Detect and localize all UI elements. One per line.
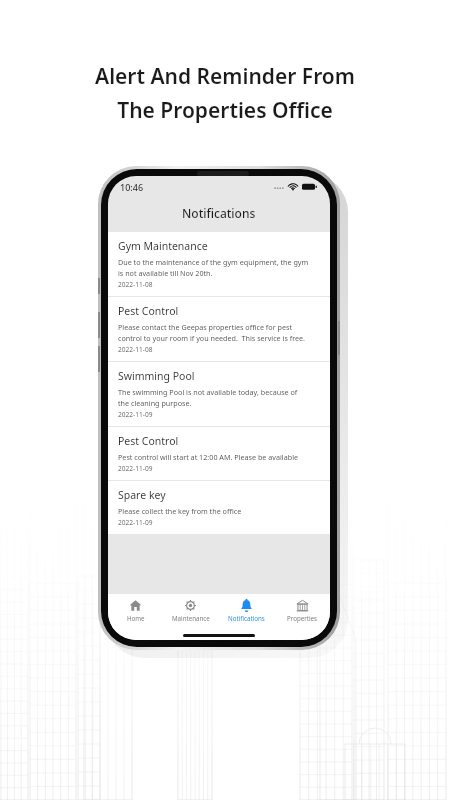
- staticText: The swimming Pool is not available today…: [118, 387, 298, 397]
- button[interactable]: Pest Control: [108, 427, 330, 480]
- button[interactable]: Spare key: [108, 481, 330, 534]
- staticText: 10:46: [120, 181, 144, 193]
- staticText: Due to the maintenance of the gym equipm…: [118, 257, 309, 267]
- staticText: Notifications: [182, 205, 256, 221]
- button[interactable]: Maintenance: [163, 599, 218, 622]
- staticText: is not available till Nov 20th.: [118, 268, 213, 278]
- staticText: Swimming Pool: [118, 369, 195, 383]
- staticText: Please contact the Geepas properties off…: [118, 322, 293, 332]
- staticText: Pest control will start at 12:00 AM. Ple…: [118, 452, 299, 462]
- button[interactable]: Swimming Pool: [108, 362, 330, 426]
- staticText: Pest Control: [118, 304, 179, 318]
- staticText: Notifications: [228, 614, 265, 622]
- staticText: Pest Control: [118, 434, 179, 448]
- button[interactable]: Home: [108, 599, 163, 622]
- button[interactable]: Notifications: [218, 599, 274, 622]
- staticText: 2022-11-08: [118, 345, 153, 354]
- button[interactable]: Pest Control: [108, 297, 330, 361]
- staticText: Gym Maintenance: [118, 239, 208, 253]
- staticText: Please collect the key from the office: [118, 506, 242, 516]
- staticText: Properties: [287, 614, 318, 622]
- staticText: 2022-11-08: [118, 280, 153, 289]
- staticText: the cleaning purpose.: [118, 398, 192, 408]
- button[interactable]: Properties: [274, 599, 330, 622]
- staticText: Spare key: [118, 488, 166, 502]
- staticText: 2022-11-09: [118, 518, 153, 527]
- staticText: The Properties Office: [117, 96, 333, 125]
- staticText: Maintenance: [172, 614, 210, 622]
- staticText: Home: [127, 614, 145, 622]
- button[interactable]: Gym Maintenance: [108, 232, 330, 296]
- staticText: control to your room if you needed. This…: [118, 333, 306, 343]
- staticText: Alert And Reminder From: [95, 62, 355, 91]
- staticText: 2022-11-09: [118, 464, 153, 473]
- staticText: 2022-11-09: [118, 410, 153, 419]
